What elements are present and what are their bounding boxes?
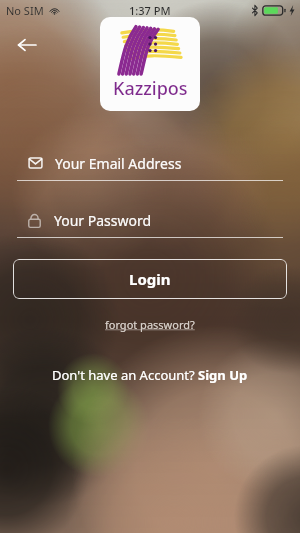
button[interactable]: Login — [13, 259, 287, 299]
button[interactable]: forgot password? — [0, 312, 300, 336]
button[interactable]: Your Password — [0, 200, 300, 240]
button[interactable]: Your Email Address — [0, 143, 300, 183]
staticText: forgot password? — [105, 317, 195, 332]
staticText: Your Password — [54, 211, 152, 230]
staticText: 1:37 PM — [129, 3, 171, 18]
staticText: No SIM — [6, 3, 44, 18]
staticText: Login — [129, 269, 171, 289]
button[interactable]: Don't have an Account? Sign Up — [0, 362, 300, 388]
staticText: Your Email Address — [55, 154, 182, 173]
staticText: Kazzipos — [113, 76, 188, 101]
staticText: Don't have an Account? Sign Up — [52, 366, 248, 384]
button[interactable]: Back — [10, 28, 44, 62]
